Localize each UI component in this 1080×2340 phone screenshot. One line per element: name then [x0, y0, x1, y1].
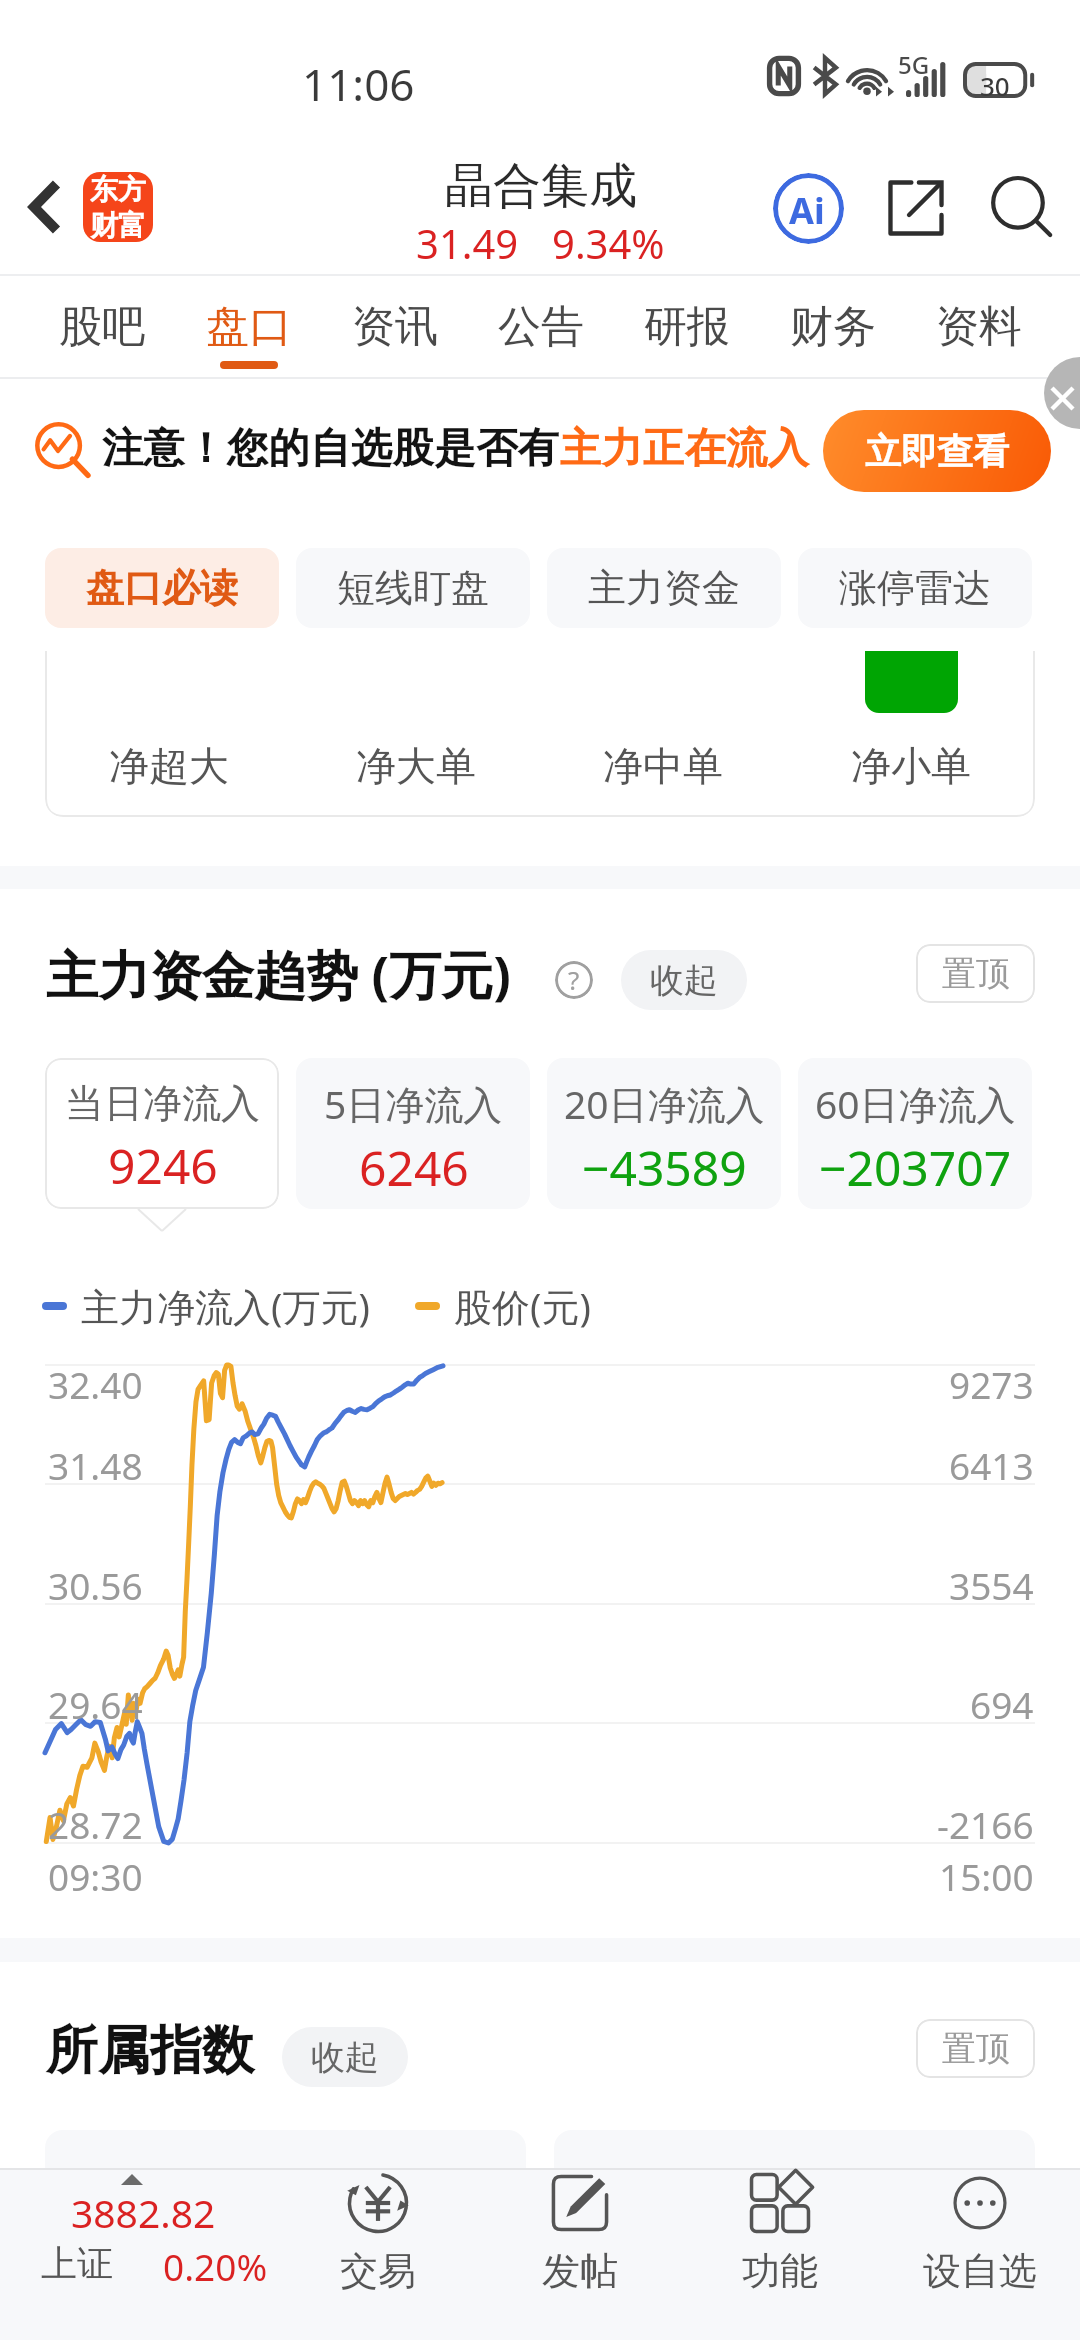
- staticText: 9.34%: [552, 216, 665, 270]
- button[interactable]: [45, 2130, 526, 2178]
- staticText: 当日净流入: [65, 1079, 260, 1128]
- button[interactable]: 资讯: [322, 276, 468, 379]
- staticText: 30.56: [48, 1560, 143, 1610]
- staticText: Ai: [789, 186, 825, 235]
- staticText: 29.64: [48, 1679, 143, 1729]
- button[interactable]: Close banner: [1044, 357, 1080, 429]
- staticText: 净小单: [851, 741, 971, 791]
- staticText: 30: [980, 68, 1010, 103]
- staticText: 11:06: [302, 54, 415, 114]
- button[interactable]: 收起: [621, 950, 747, 1010]
- button[interactable]: 20日净流入: [547, 1058, 781, 1209]
- button[interactable]: 净超大: [45, 651, 1035, 817]
- staticText: 3882.82: [71, 2186, 216, 2239]
- button[interactable]: Help: [555, 961, 593, 999]
- staticText: −203707: [819, 1135, 1012, 1200]
- staticText: 公告: [498, 300, 584, 354]
- button[interactable]: 当日净流入: [45, 1058, 279, 1209]
- button[interactable]: 主力资金: [547, 548, 781, 628]
- button[interactable]: 60日净流入: [798, 1058, 1032, 1209]
- staticText: 60日净流入: [815, 1077, 1016, 1130]
- staticText: 6413: [949, 1440, 1034, 1490]
- staticText: 净大单: [356, 741, 476, 791]
- staticText: 主力资金: [588, 564, 740, 612]
- button[interactable]: 功能: [680, 2168, 880, 2340]
- staticText: 31.49: [416, 216, 519, 270]
- button[interactable]: 盘口必读: [45, 548, 279, 628]
- staticText: 立即查看: [865, 429, 1009, 474]
- button[interactable]: 5日净流入: [296, 1058, 530, 1209]
- staticText: 财务: [790, 300, 876, 354]
- staticText: 净中单: [603, 741, 723, 791]
- staticText: 5日净流入: [324, 1077, 503, 1130]
- staticText: 晶合集成: [445, 156, 637, 216]
- staticText: 资料: [936, 300, 1022, 354]
- staticText: 主力正在流入: [560, 423, 810, 475]
- staticText: 5G: [898, 48, 930, 81]
- button[interactable]: AI assistant: [762, 162, 854, 254]
- button[interactable]: 交易: [278, 2168, 478, 2340]
- button[interactable]: 盘口: [175, 276, 322, 379]
- staticText: 28.72: [48, 1799, 143, 1849]
- staticText: 注意！您的自选股是否有: [102, 423, 560, 475]
- button[interactable]: 资料: [906, 276, 1052, 379]
- staticText: 9273: [949, 1359, 1034, 1409]
- staticText: 所属指数: [46, 2018, 254, 2084]
- staticText: 净超大: [109, 741, 229, 791]
- staticText: −43589: [582, 1135, 747, 1200]
- staticText: 3554: [949, 1560, 1034, 1610]
- staticText: 6246: [359, 1135, 469, 1200]
- button[interactable]: 设自选: [880, 2168, 1080, 2340]
- staticText: 9246: [108, 1133, 218, 1198]
- staticText: 涨停雷达: [839, 564, 991, 612]
- staticText: 主力净流入(万元): [81, 1280, 370, 1332]
- staticText: 功能: [742, 2247, 818, 2295]
- staticText: 交易: [340, 2247, 416, 2295]
- staticText: 财富: [90, 208, 146, 242]
- button[interactable]: 置顶: [916, 944, 1035, 1003]
- staticText: 31.48: [48, 1440, 143, 1490]
- staticText: 股吧: [59, 300, 145, 354]
- staticText: 股价(元): [454, 1280, 591, 1332]
- staticText: -2166: [937, 1799, 1034, 1849]
- staticText: ?: [568, 962, 580, 997]
- staticText: 主力资金趋势 (万元): [46, 938, 511, 1009]
- button[interactable]: 股吧: [28, 276, 175, 379]
- button[interactable]: 财务: [760, 276, 906, 379]
- button[interactable]: [554, 2130, 1035, 2178]
- staticText: 短线盯盘: [337, 564, 489, 612]
- staticText: 置顶: [942, 952, 1010, 995]
- button[interactable]: 立即查看: [823, 410, 1051, 492]
- staticText: 置顶: [942, 2027, 1010, 2070]
- staticText: 资讯: [352, 300, 438, 354]
- button[interactable]: 收起: [282, 2027, 408, 2087]
- staticText: 09:30: [48, 1851, 143, 1901]
- staticText: 盘口必读: [86, 564, 238, 612]
- staticText: 20日净流入: [564, 1077, 765, 1130]
- staticText: 0.20%: [163, 2241, 268, 2291]
- button[interactable]: Back: [0, 164, 86, 250]
- staticText: 研报: [644, 300, 730, 354]
- button[interactable]: 东方财富: [83, 172, 153, 242]
- button[interactable]: Share: [870, 162, 962, 254]
- staticText: 东方: [90, 172, 146, 207]
- button[interactable]: 置顶: [916, 2019, 1035, 2078]
- staticText: 盘口: [206, 300, 292, 354]
- staticText: 15:00: [939, 1851, 1034, 1901]
- staticText: 收起: [311, 2036, 379, 2079]
- button[interactable]: 发帖: [480, 2168, 680, 2340]
- button[interactable]: 研报: [614, 276, 760, 379]
- button[interactable]: [0, 2168, 280, 2340]
- button[interactable]: 公告: [468, 276, 614, 379]
- button[interactable]: 涨停雷达: [798, 548, 1032, 628]
- staticText: 收起: [650, 959, 718, 1002]
- button[interactable]: Search: [976, 163, 1068, 255]
- staticText: 32.40: [48, 1359, 143, 1409]
- staticText: 发帖: [542, 2247, 618, 2295]
- staticText: 设自选: [923, 2247, 1037, 2295]
- staticText: 上证: [41, 2241, 113, 2286]
- button[interactable]: 短线盯盘: [296, 548, 530, 628]
- staticText: 694: [970, 1679, 1034, 1729]
